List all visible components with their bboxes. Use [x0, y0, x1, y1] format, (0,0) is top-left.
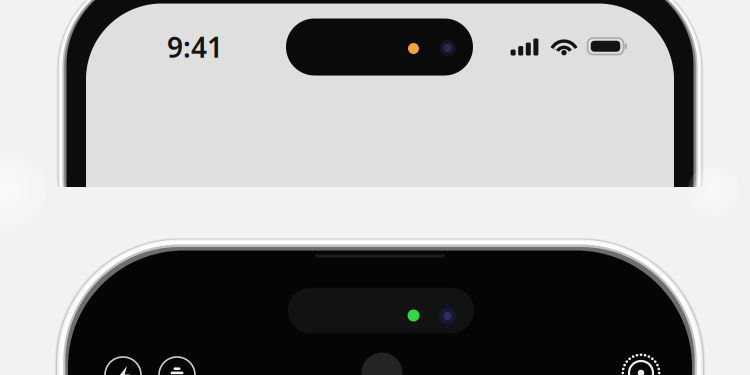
button[interactable]: Night mode [357, 263, 393, 299]
button[interactable]: Live Photo [355, 261, 395, 301]
staticText: 9:41 [167, 28, 223, 66]
button[interactable]: More camera options [354, 260, 395, 301]
button[interactable]: Flash [357, 263, 393, 299]
